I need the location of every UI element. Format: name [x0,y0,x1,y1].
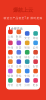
button[interactable]: 容器 [15,40,23,49]
button[interactable]: 迁移 [15,59,23,68]
staticText: 分析 [24,84,30,87]
button[interactable]: 监控 [31,40,40,49]
button[interactable]: 托管 [6,78,15,87]
staticText: 数据库 [16,35,22,41]
button[interactable]: 证书 [31,50,40,59]
button[interactable]: 云服务 [6,31,15,40]
button[interactable]: 加速 [15,50,23,59]
button[interactable]: 数据库 [15,31,23,40]
button[interactable]: 分析 [23,78,31,87]
staticText: 监控 [33,46,39,49]
staticText: 爆款上云 [13,7,33,13]
staticText: 更多 [33,84,39,87]
button[interactable]: 更多 [31,78,40,87]
staticText: 迁移 [16,65,22,68]
staticText: 专线 [24,74,30,77]
button[interactable]: 存储 [6,40,15,49]
button[interactable]: 告警 [31,59,40,68]
staticText: 智能 [24,46,30,49]
button[interactable]: 运维 [15,78,23,87]
button[interactable]: 专线 [23,69,31,78]
staticText: 镜像 [7,74,13,77]
button[interactable]: 备份 [6,50,15,59]
button[interactable]: 网络 [31,31,40,40]
button[interactable]: 镜像 [6,69,15,78]
staticText: 加速 [16,55,22,59]
staticText: 弹性 [16,74,22,77]
staticText: 容器 [16,46,22,49]
button[interactable]: 审计 [31,69,40,78]
staticText: 备份 [7,55,13,59]
staticText: 安全 [24,37,30,40]
staticText: 计算 [7,65,13,68]
staticText: 网络 [33,37,39,40]
staticText: 审计 [33,74,39,77]
staticText: 告警 [33,65,39,68]
staticText: 云服务 [7,35,13,41]
button[interactable]: 弹性 [15,69,23,78]
staticText: 日志 [24,65,30,68]
staticText: 全部产品 [11,27,23,30]
button[interactable]: 计算 [6,59,15,68]
staticText: 运维 [16,84,22,87]
button[interactable]: 安全 [23,31,31,40]
button[interactable]: 日志 [23,59,31,68]
staticText: 证书 [33,55,39,59]
staticText: 域名 [24,55,30,59]
staticText: 精选云产品低至1折 限时抢购 [3,16,42,20]
staticText: 存储 [7,46,13,49]
button[interactable]: 智能 [23,40,31,49]
button[interactable]: 域名 [23,50,31,59]
staticText: 托管 [7,84,13,87]
